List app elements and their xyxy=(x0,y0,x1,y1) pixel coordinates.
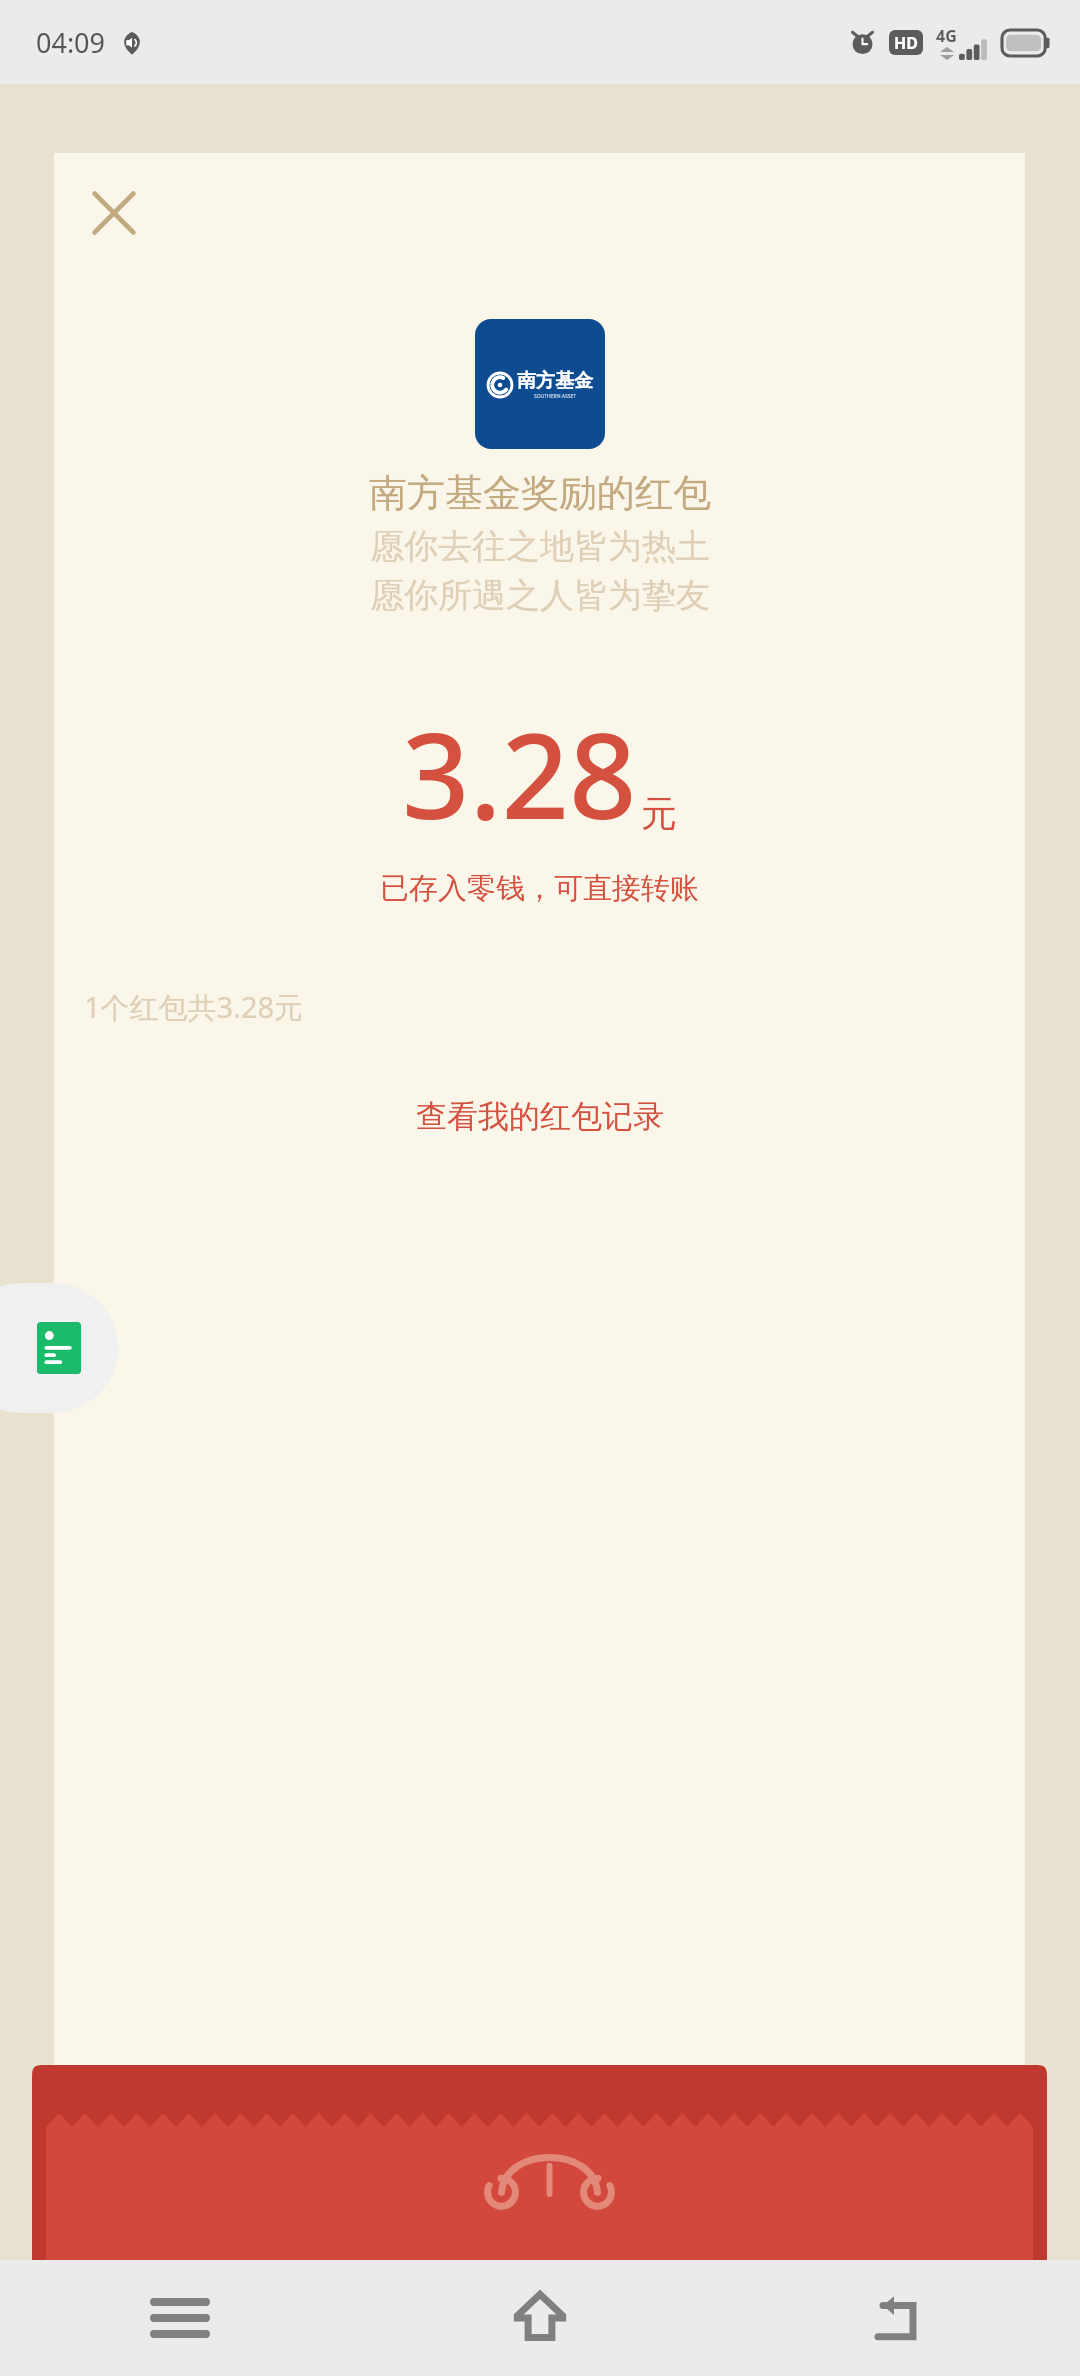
staticText: SOUTHERN ASSET xyxy=(534,393,577,400)
staticText: 南方基金奖励的红包 xyxy=(369,469,711,517)
staticText: 4G xyxy=(936,25,957,47)
staticText: 愿你去往之地皆为热土 xyxy=(370,525,710,568)
staticText: HD xyxy=(894,32,918,54)
button[interactable]: Home xyxy=(360,2260,720,2376)
button[interactable]: Recent apps xyxy=(0,2260,360,2376)
staticText: 查看我的红包记录 xyxy=(416,1097,664,1136)
staticText: 元 xyxy=(641,791,677,836)
staticText: 1个红包共3.28元 xyxy=(84,987,304,1027)
button[interactable]: Open form xyxy=(0,1283,118,1413)
staticText: 04:09 xyxy=(36,24,106,61)
staticText: 3.28 xyxy=(402,693,637,854)
button[interactable]: Close xyxy=(72,171,156,255)
staticText: 已存入零钱，可直接转账 xyxy=(380,870,699,907)
button[interactable]: 查看我的红包记录 xyxy=(392,1085,688,1148)
button[interactable]: Back xyxy=(720,2260,1080,2376)
staticText: 南方基金 xyxy=(517,369,593,393)
staticText: 愿你所遇之人皆为挚友 xyxy=(370,574,710,617)
